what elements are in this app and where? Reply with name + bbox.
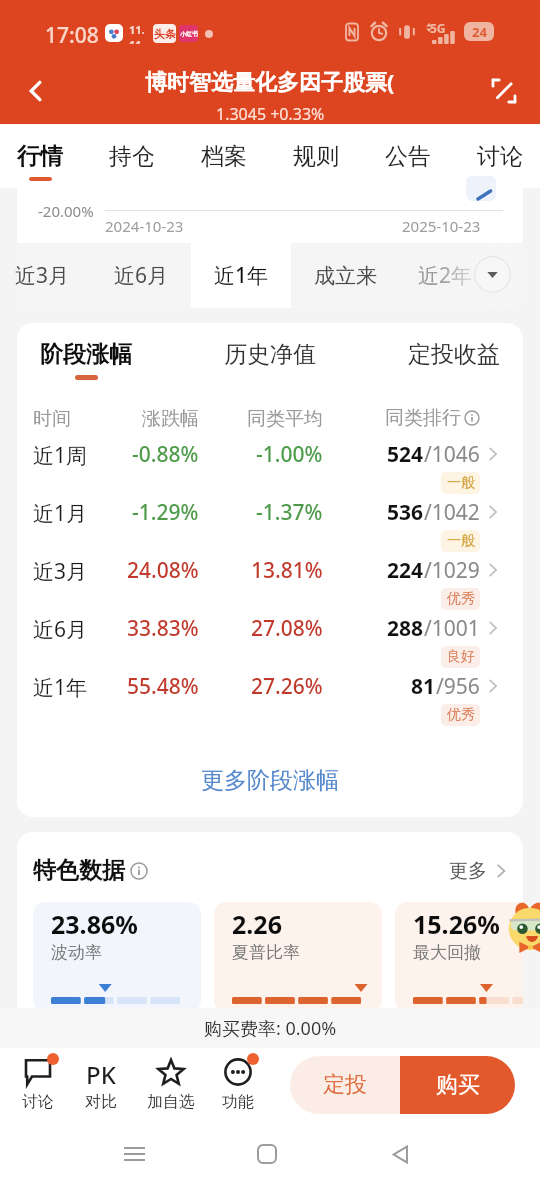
button[interactable]: 近3月 <box>17 548 523 606</box>
staticText: 524 <box>387 440 424 469</box>
staticText: 一般 <box>447 474 475 492</box>
staticText: 近2年 <box>418 261 473 290</box>
button[interactable]: 近6月 <box>91 243 191 308</box>
staticText: 功能 <box>222 1092 254 1112</box>
button[interactable]: 阶段涨幅 <box>26 340 146 386</box>
staticText: 一般 <box>447 532 475 550</box>
staticText: 更多 <box>449 859 487 883</box>
button[interactable]: Share <box>480 67 528 115</box>
button[interactable]: 更多阶段涨幅 <box>17 763 523 797</box>
staticText: 同类排行 <box>385 406 461 430</box>
staticText: -1.29% <box>132 498 199 527</box>
button[interactable]: 近1月 <box>17 490 523 548</box>
staticText: 11.11 <box>129 22 149 44</box>
staticText: 讨论 <box>22 1092 54 1112</box>
button[interactable]: 历史净值 <box>210 340 330 386</box>
button[interactable]: 近6月 <box>17 606 523 664</box>
button[interactable]: 讨论 <box>454 124 540 188</box>
button[interactable]: 近3月 <box>0 243 92 308</box>
button[interactable]: 持仓 <box>86 124 178 188</box>
button[interactable]: 近1年 <box>17 664 523 722</box>
staticText: 1.3045 +0.33% <box>216 103 325 125</box>
staticText: -1.37% <box>256 498 323 527</box>
staticText: 最大回撤 <box>413 942 481 963</box>
button[interactable]: 购买 <box>400 1056 515 1114</box>
staticText: 24.08% <box>127 556 199 585</box>
staticText: 81 <box>411 672 436 701</box>
button[interactable]: 讨论 <box>0 1048 78 1122</box>
staticText: /1001 <box>424 614 480 643</box>
staticText: 小红书 <box>180 30 198 38</box>
button[interactable]: Back <box>380 1134 420 1174</box>
staticText: /1029 <box>424 556 480 585</box>
button[interactable]: 近1周 <box>17 432 523 490</box>
staticText: 特色数据 <box>33 856 125 885</box>
button[interactable]: 档案 <box>178 124 270 188</box>
staticText: 近3月 <box>15 261 70 290</box>
staticText: 224 <box>387 556 424 585</box>
staticText: 规则 <box>293 142 339 171</box>
staticText: 近1年 <box>214 261 269 290</box>
staticText: 2025-10-23 <box>402 216 481 236</box>
staticText: 成立来 <box>314 263 377 289</box>
staticText: 档案 <box>201 142 247 171</box>
staticText: 涨跌幅 <box>142 407 199 431</box>
staticText: 购买 <box>436 1071 480 1099</box>
staticText: 加自选 <box>147 1092 195 1112</box>
staticText: 行情 <box>17 142 63 171</box>
button[interactable]: 成立来 <box>295 243 395 308</box>
staticText: 17:08 <box>45 21 99 50</box>
staticText: 更多阶段涨幅 <box>201 766 339 795</box>
button[interactable]: 公告 <box>362 124 454 188</box>
staticText: 同类平均 <box>247 407 323 431</box>
button[interactable]: 近2年 <box>395 243 495 308</box>
button[interactable]: Back <box>12 67 60 115</box>
staticText: /1046 <box>424 440 480 469</box>
staticText: 对比 <box>85 1092 117 1112</box>
staticText: 23.86% <box>51 907 138 941</box>
staticText: 近6月 <box>114 261 169 290</box>
staticText: 24 <box>472 23 487 41</box>
staticText: /956 <box>436 672 480 701</box>
staticText: 定投 <box>323 1071 367 1099</box>
staticText: -1.00% <box>256 440 323 469</box>
staticText: PK <box>86 1058 116 1086</box>
staticText: 持仓 <box>109 142 155 171</box>
button[interactable]: 2.26 <box>214 902 382 1012</box>
staticText: 近6月 <box>33 615 88 644</box>
button[interactable]: Home <box>247 1134 287 1174</box>
button[interactable]: 行情 <box>0 124 86 188</box>
button[interactable]: 定投收益 <box>394 340 514 386</box>
button[interactable]: 功能 <box>198 1048 278 1122</box>
staticText: 536 <box>387 498 424 527</box>
staticText: 夏普比率 <box>232 942 300 963</box>
staticText: -20.00% <box>38 201 94 221</box>
staticText: 33.83% <box>127 614 199 643</box>
staticText: 优秀 <box>447 706 475 724</box>
staticText: 优秀 <box>447 590 475 608</box>
button[interactable]: 加自选 <box>131 1048 211 1122</box>
staticText: /1042 <box>424 498 480 527</box>
button[interactable]: 更多 <box>449 859 508 883</box>
staticText: 近1周 <box>33 441 88 470</box>
button[interactable]: 定投 <box>290 1056 400 1114</box>
staticText: 27.08% <box>251 614 323 643</box>
staticText: 讨论 <box>477 142 523 171</box>
staticText: 头条 <box>154 27 176 41</box>
button[interactable]: 23.86% <box>33 902 201 1012</box>
staticText: 博时智选量化多因子股票( <box>145 66 395 96</box>
button[interactable]: 15.26% <box>395 902 523 1012</box>
staticText: 55.48% <box>127 672 199 701</box>
button[interactable]: 近1年 <box>191 243 291 308</box>
staticText: 阶段涨幅 <box>40 340 132 369</box>
staticText: 近1年 <box>33 673 88 702</box>
button[interactable]: PK <box>61 1048 141 1122</box>
staticText: 近3月 <box>33 557 88 586</box>
staticText: 时间 <box>33 407 71 431</box>
button[interactable]: 规则 <box>270 124 362 188</box>
button[interactable]: Recents <box>114 1134 154 1174</box>
staticText: 15.26% <box>413 907 500 941</box>
staticText: 良好 <box>447 648 475 666</box>
button[interactable]: More periods <box>474 256 511 293</box>
staticText: -0.88% <box>132 440 199 469</box>
